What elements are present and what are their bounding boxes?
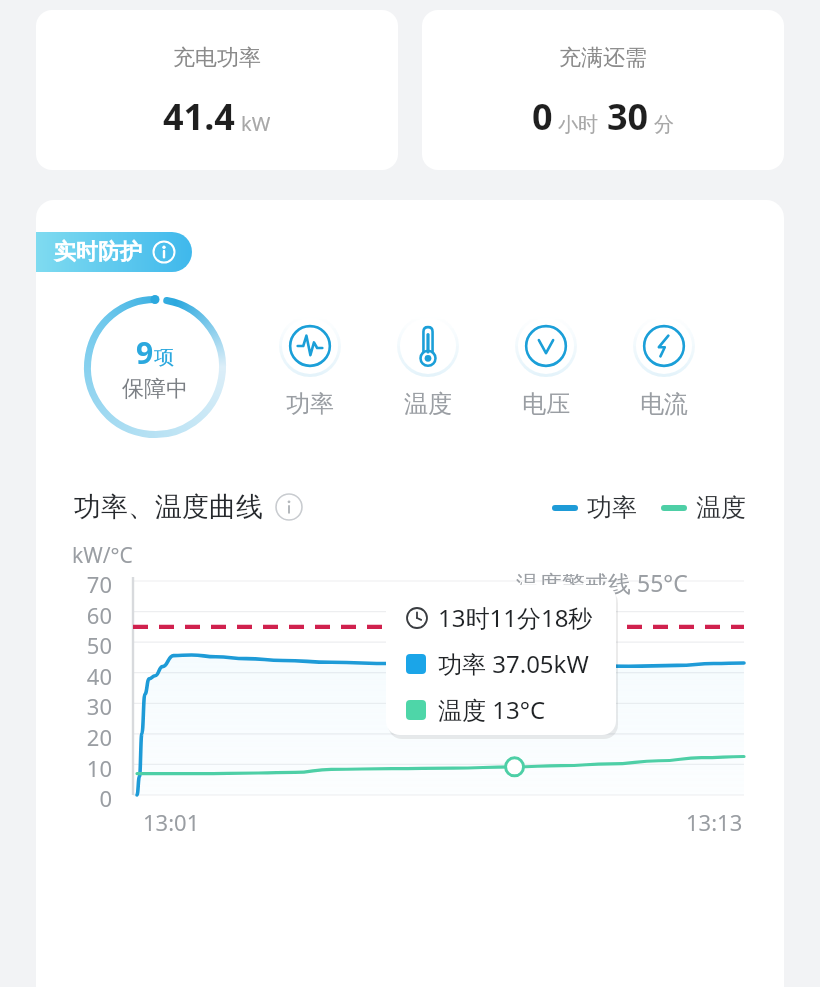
- button[interactable]: Info: [275, 493, 303, 521]
- staticText: 实时防护: [54, 238, 142, 266]
- staticText: 保障中: [122, 375, 188, 403]
- button[interactable]: 实时防护: [36, 232, 192, 272]
- staticText: 功率 37.05kW: [438, 647, 589, 680]
- button[interactable]: Power: [270, 315, 350, 419]
- staticText: 0: [532, 92, 553, 141]
- staticText: kW: [241, 110, 271, 137]
- staticText: kW/°C: [72, 541, 133, 570]
- staticText: 电流: [640, 389, 688, 419]
- button[interactable]: 充电功率: [36, 10, 398, 170]
- staticText: 9: [136, 332, 154, 373]
- staticText: 功率、温度曲线: [74, 490, 263, 524]
- staticText: 10: [68, 753, 112, 783]
- button[interactable]: Temperature: [388, 315, 468, 419]
- staticText: 温度警戒线 55°C: [516, 567, 688, 598]
- staticText: 20: [68, 722, 112, 752]
- button[interactable]: 13时11分18秒: [386, 585, 616, 735]
- staticText: 40: [68, 661, 112, 691]
- staticText: 项: [154, 345, 174, 370]
- staticText: 充满还需: [559, 44, 647, 72]
- staticText: 0: [68, 783, 112, 813]
- staticText: 13:01: [143, 807, 200, 837]
- staticText: 温度: [404, 389, 452, 419]
- staticText: 功率: [286, 389, 334, 419]
- staticText: 70: [68, 569, 112, 599]
- staticText: 温度 13°C: [438, 693, 546, 726]
- staticText: 50: [68, 630, 112, 660]
- button[interactable]: 温度: [661, 492, 746, 523]
- button[interactable]: 9: [82, 294, 228, 440]
- staticText: 30: [68, 691, 112, 721]
- staticText: 温度: [696, 492, 746, 523]
- staticText: 小时: [558, 112, 598, 137]
- staticText: 电压: [522, 389, 570, 419]
- staticText: 功率: [587, 492, 637, 523]
- button[interactable]: 充满还需: [422, 10, 784, 170]
- staticText: 13:13: [686, 807, 743, 837]
- staticText: 13时11分18秒: [438, 601, 593, 634]
- button[interactable]: Current: [624, 315, 704, 419]
- staticText: 30: [607, 92, 649, 141]
- staticText: 41.4: [163, 92, 235, 141]
- staticText: 充电功率: [173, 44, 261, 72]
- staticText: 60: [68, 600, 112, 630]
- button[interactable]: 功率: [552, 492, 637, 523]
- button[interactable]: Voltage: [506, 315, 586, 419]
- staticText: 分: [654, 112, 674, 137]
